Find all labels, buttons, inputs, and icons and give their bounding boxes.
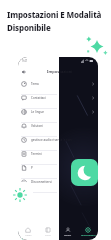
button[interactable]: Home [18, 227, 38, 237]
button[interactable]: Impostazioni [78, 227, 98, 237]
staticText: Disponibile [7, 22, 51, 33]
staticText: Impostazioni [47, 69, 73, 74]
button[interactable]: P [18, 165, 98, 179]
button[interactable]: Profilo [58, 227, 78, 237]
staticText: Disconnettersi [31, 180, 52, 184]
staticText: Tema [31, 82, 39, 86]
staticText: gestisce audio riserva lezioni [31, 138, 73, 142]
staticText: 9:41 [22, 59, 28, 63]
button[interactable]: Tema [18, 81, 98, 95]
button[interactable]: Modalità scura [71, 159, 98, 186]
staticText: Termini [31, 152, 42, 156]
staticText: Volutoni [31, 124, 43, 128]
button[interactable]: Disconnettersi [18, 179, 98, 193]
staticText: Impostazioni E Modalità [7, 9, 102, 20]
staticText: Profilo [64, 234, 72, 237]
button[interactable]: Modalità chiara [7, 182, 33, 208]
button[interactable]: Indietro [20, 68, 28, 76]
staticText: Le lingue [31, 110, 45, 114]
button[interactable]: Contattaci [18, 95, 98, 109]
button[interactable]: Le lingue [18, 109, 98, 123]
button[interactable]: Corsi [38, 227, 58, 237]
staticText: Impostazioni [81, 234, 96, 237]
button[interactable]: gestisce audio riserva lezioni [18, 137, 98, 151]
staticText: Home [25, 234, 32, 237]
button[interactable]: Volutoni [18, 123, 98, 137]
staticText: Contattaci [31, 96, 46, 100]
staticText: P [31, 166, 33, 170]
staticText: Corsi [45, 234, 51, 237]
button[interactable]: Termini [18, 151, 98, 165]
